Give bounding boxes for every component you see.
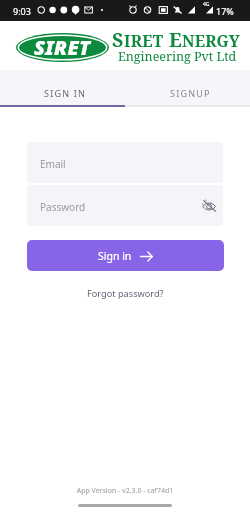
staticText: App Version - v2.3.0 - caf74d1 — [0, 486, 250, 496]
button[interactable]: Sign in — [27, 240, 224, 271]
staticText: Email — [40, 157, 66, 171]
staticText: SIGN IN — [44, 87, 87, 99]
staticText: 4G — [203, 1, 210, 8]
button[interactable]: Password — [27, 185, 223, 226]
staticText: Engineering Pvt Ltd — [118, 48, 237, 65]
staticText: SIGNUP — [170, 87, 211, 99]
staticText: 9:03 — [13, 5, 31, 17]
staticText: S — [112, 26, 124, 53]
button[interactable]: SIGNUP — [125, 70, 250, 107]
button[interactable]: Show password — [198, 195, 220, 217]
staticText: IRET — [124, 30, 164, 52]
staticText: SIRET — [34, 34, 91, 61]
button[interactable]: Forgot password? — [81, 285, 170, 302]
staticText: 17% — [216, 5, 234, 17]
staticText: Sign in — [98, 249, 132, 263]
staticText: Password — [40, 200, 86, 214]
staticText: NERGY — [182, 30, 240, 52]
staticText: E — [169, 26, 182, 53]
button[interactable]: Email — [27, 142, 223, 183]
button[interactable]: SIGN IN — [0, 70, 125, 107]
